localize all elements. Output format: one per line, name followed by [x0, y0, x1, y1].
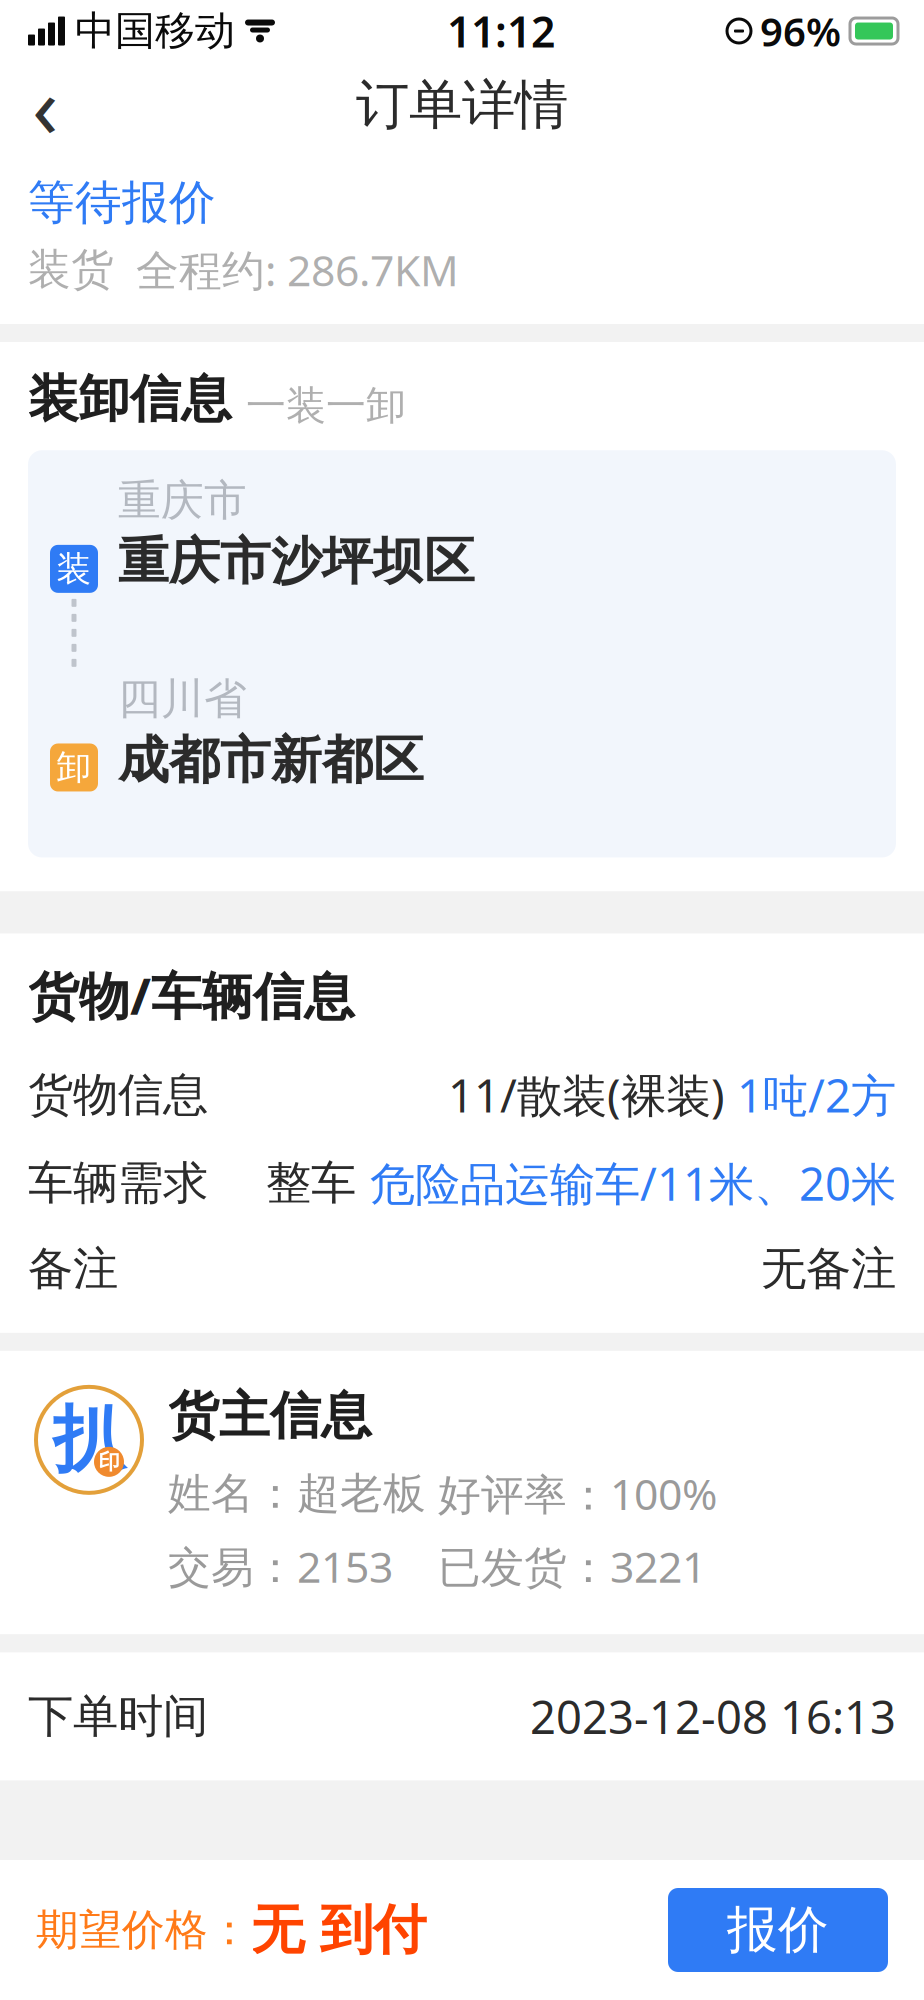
staticText: 整车 [266, 1155, 370, 1211]
staticText: 全程约: 286.7KM [136, 241, 459, 298]
staticText: 期望价格： [36, 1904, 251, 1956]
staticText: 等待报价 [28, 174, 216, 231]
staticText: 无备注 [761, 1241, 896, 1297]
staticText: 中国移动 [75, 6, 235, 55]
staticText: 装 [56, 548, 91, 590]
staticText: 装卸信息 [28, 368, 232, 430]
button[interactable]: Back [0, 60, 90, 150]
staticText: 四川省 [118, 673, 247, 725]
staticText: 无 到付 [251, 1897, 426, 1963]
staticText: ‹ [32, 48, 58, 162]
staticText: 一装一卸 [246, 381, 406, 430]
staticText: 下单时间 [28, 1689, 208, 1744]
staticText: 96% [760, 4, 841, 57]
staticText: 货物/车辆信息 [28, 961, 355, 1029]
staticText: 交易：2153 [168, 1538, 393, 1594]
staticText: 好评率：100% [438, 1465, 717, 1522]
staticText: 货主信息 [168, 1385, 372, 1447]
staticText: 重庆市沙坪坝区 [118, 531, 475, 593]
staticText: 重庆市 [118, 474, 247, 527]
staticText: 2023-12-08 16:13 [530, 1686, 896, 1747]
staticText: 报价 [727, 1899, 829, 1961]
staticText: 1吨/2方 [737, 1065, 896, 1125]
staticText: 11:12 [447, 3, 555, 59]
staticText: 姓名：超老板 [168, 1467, 426, 1520]
staticText: 卸 [56, 746, 91, 789]
staticText: 印 [98, 1449, 119, 1475]
staticText: 已发货：3221 [438, 1538, 706, 1594]
staticText: 成都市新都区 [118, 729, 424, 791]
staticText: 装货 [28, 243, 114, 296]
staticText: 订单详情 [356, 72, 568, 138]
staticText: 11/散装(裸装) [448, 1065, 737, 1125]
button[interactable]: 报价 [668, 1888, 888, 1972]
staticText: 备注 [28, 1241, 118, 1297]
staticText: 危险品运输车/11米、20米 [370, 1153, 896, 1213]
staticText: 扒 [53, 1396, 125, 1484]
staticText: 车辆需求 [28, 1155, 208, 1211]
staticText: 货物信息 [28, 1067, 208, 1123]
